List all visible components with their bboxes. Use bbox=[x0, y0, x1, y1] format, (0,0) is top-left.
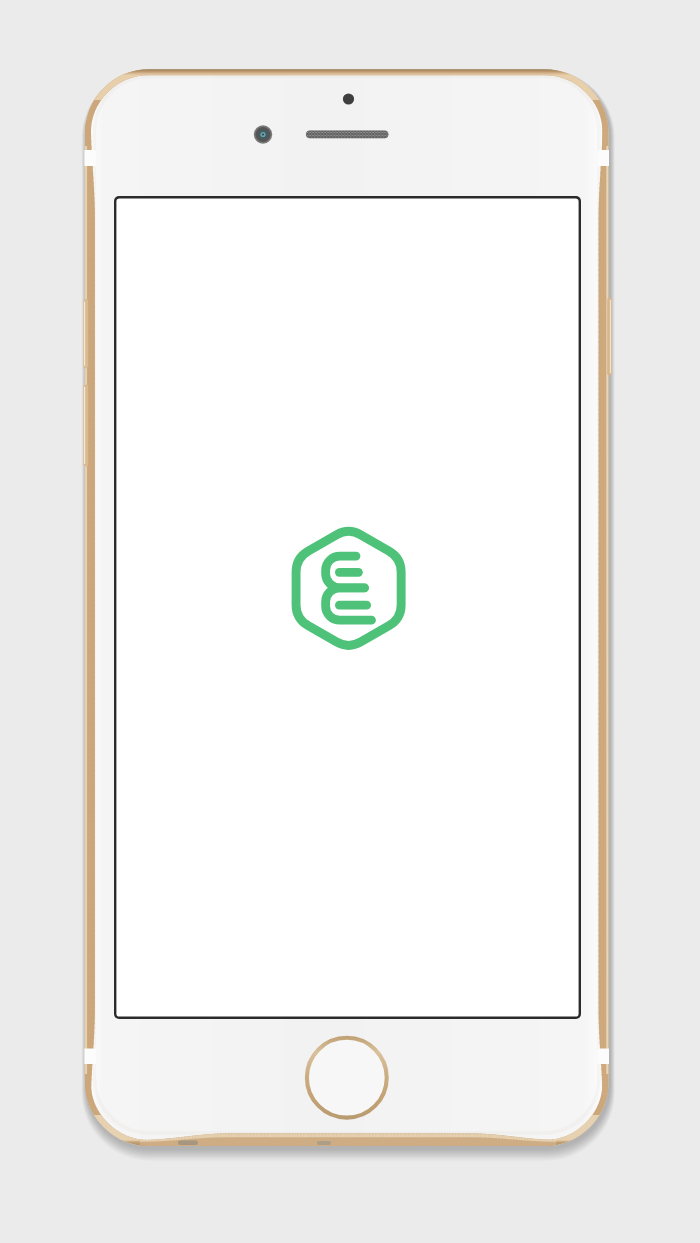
button[interactable]: App splash screen with logo bbox=[0, 0, 700, 1243]
